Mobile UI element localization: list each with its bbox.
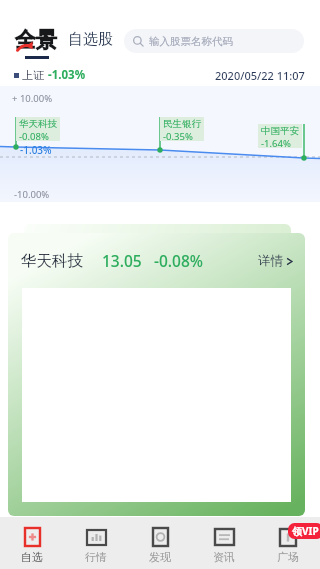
staticText: 自选股 [68,30,113,49]
button[interactable]: 广场 [256,517,320,569]
staticText: 华天科技 [19,118,57,130]
staticText: 行情 [85,550,107,564]
staticText: -1.03% [48,67,86,83]
staticText: 中国平安 [261,125,299,137]
staticText: -1.03% [20,143,52,157]
staticText: 领VIP [292,524,319,538]
button[interactable]: 全景 logo [15,26,63,62]
staticText: -0.08% [154,250,203,271]
button[interactable]: 行情 [64,517,128,569]
staticText: 民生银行 [163,118,201,130]
staticText: 输入股票名称代码 [149,35,233,48]
button[interactable]: 资讯 [192,517,256,569]
staticText: -10.00% [14,188,50,201]
staticText: -0.35% [163,130,193,141]
staticText: 13.05 [102,250,142,271]
staticText: 详情 [258,253,283,269]
staticText: 发现 [149,550,171,564]
staticText: 资讯 [213,550,235,564]
staticText: 广场 [277,550,299,564]
staticText: 华天科技 [21,251,83,271]
button[interactable]: 发现 [128,517,192,569]
button[interactable]: 详情 [258,253,293,269]
button[interactable]: 自选股 [68,30,113,49]
staticText: + 10.00% [12,92,53,105]
button[interactable]: 华天科技 [8,233,305,516]
staticText: -1.64% [261,137,291,148]
staticText: 自选 [21,550,43,564]
staticText: 上证 [22,68,44,82]
button[interactable]: 自选 [0,517,64,569]
staticText: -0.08% [19,130,49,141]
staticText: 2020/05/22 11:07 [215,68,305,83]
staticText: 全景 [15,27,57,53]
button[interactable]: 输入股票名称代码 [124,29,304,53]
